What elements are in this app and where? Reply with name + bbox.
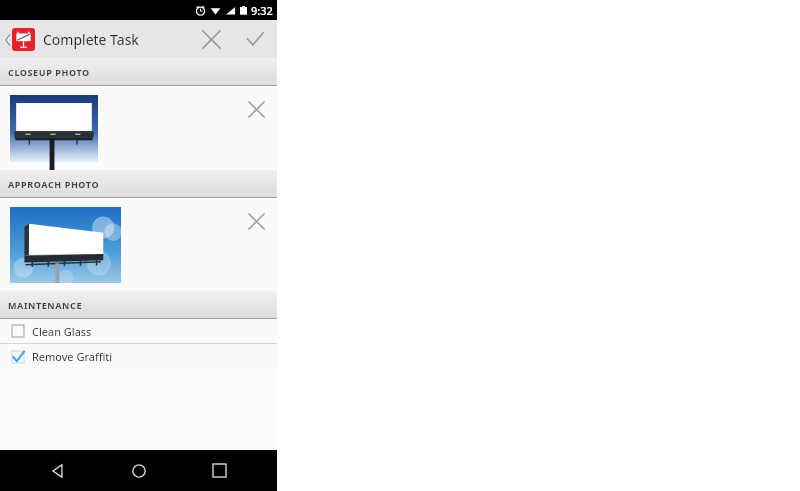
- button[interactable]: Remove Graffiti: [0, 344, 277, 369]
- button[interactable]: Remove photo: [235, 203, 277, 239]
- button[interactable]: Back: [35, 450, 81, 491]
- staticText: 9:32: [251, 3, 273, 18]
- staticText: Complete Task: [43, 30, 189, 49]
- button[interactable]: Remove photo: [0, 86, 277, 170]
- button[interactable]: Cancel: [189, 20, 233, 58]
- staticText: APPROACH PHOTO: [8, 178, 100, 190]
- staticText: MAINTENANCE: [8, 299, 83, 311]
- staticText: Clean Glass: [32, 324, 92, 339]
- button[interactable]: Remove photo: [235, 91, 277, 127]
- button[interactable]: Home: [116, 450, 162, 491]
- staticText: CLOSEUP PHOTO: [8, 66, 90, 78]
- button[interactable]: Remove photo: [0, 198, 277, 291]
- button[interactable]: Clean Glass: [0, 319, 277, 343]
- button[interactable]: Recents: [196, 450, 242, 491]
- staticText: Remove Graffiti: [32, 349, 113, 364]
- button[interactable]: [0, 28, 37, 51]
- button[interactable]: Done: [233, 20, 277, 58]
